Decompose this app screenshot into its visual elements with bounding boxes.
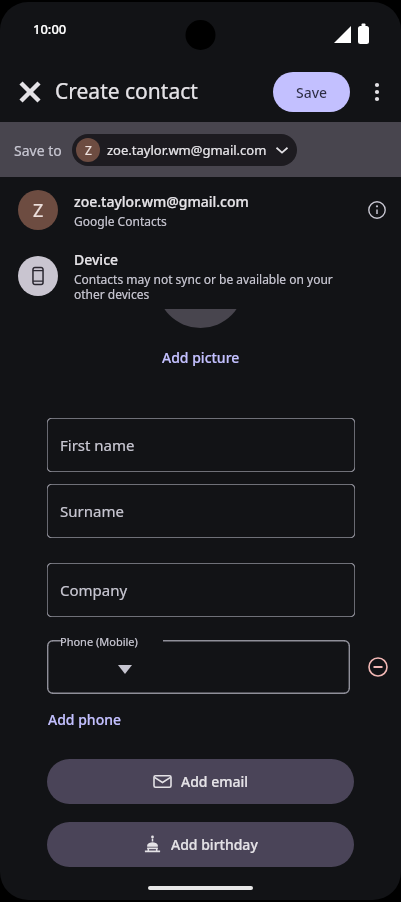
staticText: First name xyxy=(60,435,135,455)
button[interactable]: Account info xyxy=(361,194,393,226)
button[interactable]: Add birthday xyxy=(47,822,354,867)
button[interactable]: Z xyxy=(72,134,297,166)
button[interactable]: Save xyxy=(273,72,350,112)
staticText: Save xyxy=(296,83,328,102)
button[interactable]: Z xyxy=(0,177,401,243)
staticText: Company xyxy=(60,580,128,600)
staticText: 10:00 xyxy=(33,20,67,38)
button[interactable]: Add picture xyxy=(0,345,401,369)
staticText: Z xyxy=(33,198,44,223)
staticText: Add picture xyxy=(162,348,240,367)
button[interactable]: More options xyxy=(357,72,397,112)
button[interactable]: Device xyxy=(0,243,401,309)
button[interactable]: Company xyxy=(47,563,355,617)
button[interactable]: Add phone xyxy=(48,710,121,729)
staticText: Google Contacts xyxy=(74,213,167,229)
staticText: Add phone xyxy=(48,710,121,729)
staticText: zoe.taylor.wm@gmail.com xyxy=(107,141,267,159)
staticText: Z xyxy=(85,142,92,158)
staticText: Phone (Mobile) xyxy=(60,634,138,649)
staticText: Surname xyxy=(60,501,124,521)
button[interactable]: Add email xyxy=(47,759,354,804)
staticText: Add email xyxy=(181,772,249,791)
staticText: Create contact xyxy=(55,77,198,106)
staticText: Contacts may not sync or be available on… xyxy=(74,271,364,302)
button[interactable]: Surname xyxy=(47,484,355,538)
staticText: Device xyxy=(74,250,119,269)
staticText: zoe.taylor.wm@gmail.com xyxy=(74,192,249,211)
button[interactable] xyxy=(47,640,350,694)
button[interactable]: First name xyxy=(47,418,355,472)
button[interactable]: Close xyxy=(10,72,50,112)
staticText: Save to xyxy=(14,141,62,160)
staticText: Add birthday xyxy=(171,835,258,854)
button[interactable]: Remove phone xyxy=(362,651,394,683)
